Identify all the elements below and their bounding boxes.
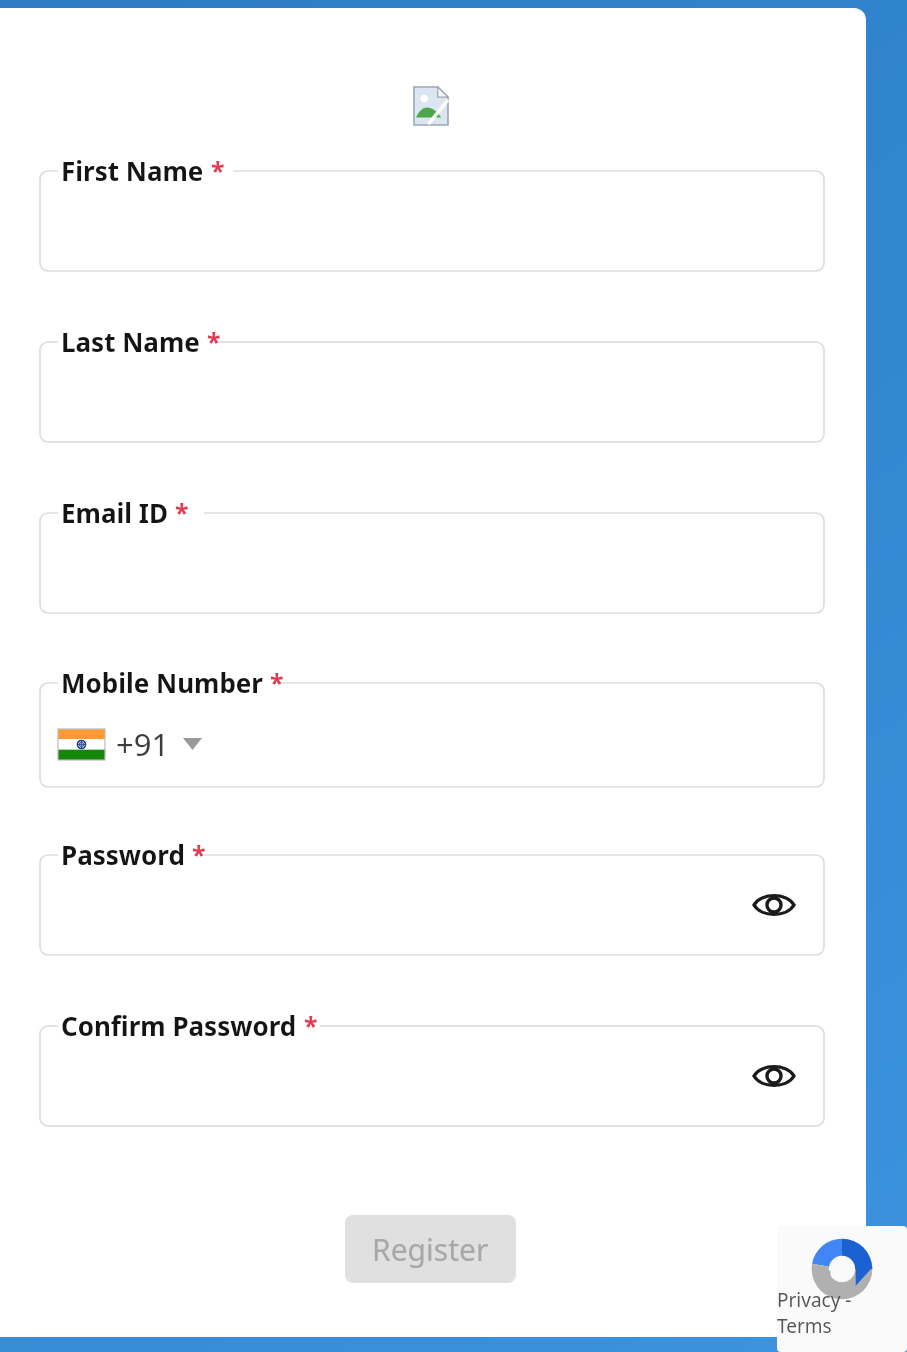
button[interactable]: First Name xyxy=(40,171,824,271)
staticText: Mobile Number xyxy=(61,665,263,700)
staticText: Privacy - Terms xyxy=(777,1287,907,1339)
staticText: * xyxy=(211,153,225,187)
button[interactable]: Email ID xyxy=(40,513,824,613)
button[interactable]: Confirm Password xyxy=(40,1026,824,1126)
staticText: * xyxy=(304,1008,318,1042)
staticText: Last Name xyxy=(61,324,200,359)
staticText: +91 xyxy=(116,723,170,765)
staticText: Email ID xyxy=(61,495,168,530)
button[interactable]: Mobile Number xyxy=(40,683,824,787)
button[interactable]: reCAPTCHA Privacy and Terms xyxy=(777,1226,907,1352)
staticText: First Name xyxy=(61,153,204,188)
staticText: Password xyxy=(61,837,185,872)
staticText: * xyxy=(270,665,284,699)
button[interactable]: Select country code xyxy=(54,719,206,769)
staticText: Confirm Password xyxy=(61,1008,297,1043)
button[interactable]: Last Name xyxy=(40,342,824,442)
staticText: Register xyxy=(372,1229,489,1270)
button[interactable]: Register xyxy=(345,1215,516,1283)
staticText: * xyxy=(175,495,189,529)
button[interactable]: Toggle password visibility xyxy=(748,879,800,931)
button[interactable]: Password xyxy=(40,855,824,955)
staticText: * xyxy=(192,837,206,871)
button[interactable]: Toggle password visibility xyxy=(748,1050,800,1102)
staticText: * xyxy=(207,324,221,358)
